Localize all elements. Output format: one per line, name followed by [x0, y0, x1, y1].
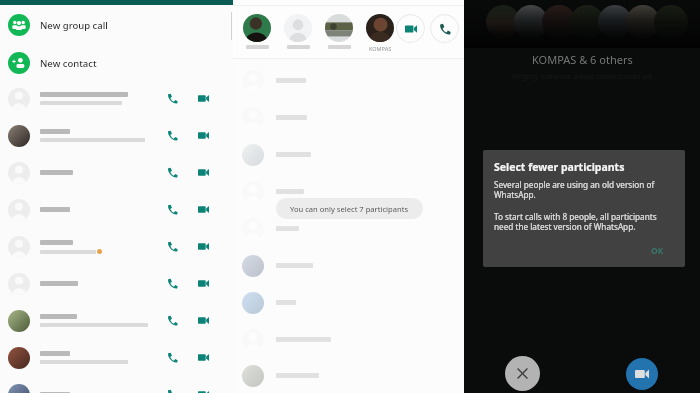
staticText: KOMPAS & 6 others — [532, 52, 633, 67]
staticText: To start calls with 8 people, all partic… — [494, 211, 657, 233]
button[interactable]: Voice call — [430, 14, 459, 43]
button[interactable] — [233, 62, 464, 99]
button[interactable] — [366, 14, 394, 42]
button[interactable]: Voice call — [162, 228, 182, 265]
button[interactable]: Voice call — [162, 265, 182, 302]
button[interactable]: Voice call — [162, 302, 182, 339]
button[interactable] — [325, 14, 353, 42]
button[interactable]: Start video call — [626, 358, 658, 390]
button[interactable]: Voice call — [162, 80, 182, 117]
button[interactable]: Voice call — [162, 376, 182, 393]
button[interactable]: Video call — [193, 376, 213, 393]
button[interactable] — [233, 173, 464, 210]
button[interactable]: Voice call — [0, 376, 233, 393]
button[interactable]: Voice call — [0, 80, 233, 117]
button[interactable]: Video call — [193, 80, 213, 117]
button[interactable]: OK — [647, 242, 668, 260]
button[interactable] — [233, 136, 464, 173]
button[interactable]: Voice call — [0, 302, 233, 339]
staticText: New group call — [40, 19, 108, 32]
staticText: Select fewer participants — [494, 160, 625, 174]
staticText: OK — [651, 245, 664, 257]
button[interactable]: Voice call — [0, 228, 233, 265]
staticText: KOMPAS — [369, 45, 392, 52]
staticText: Several people are using an old version … — [494, 179, 655, 201]
button[interactable]: Cancel call — [505, 356, 540, 391]
button[interactable] — [243, 14, 271, 42]
button[interactable]: Voice call — [162, 339, 182, 376]
button[interactable]: Video call — [396, 14, 425, 43]
button[interactable] — [233, 321, 464, 358]
button[interactable] — [233, 210, 464, 247]
button[interactable]: Video call — [193, 117, 213, 154]
button[interactable]: Video call — [193, 228, 213, 265]
button[interactable] — [233, 247, 464, 284]
button[interactable] — [284, 14, 312, 42]
button[interactable]: Video call — [193, 339, 213, 376]
button[interactable]: Video call — [193, 265, 213, 302]
button[interactable] — [233, 99, 464, 136]
button[interactable]: Voice call — [0, 191, 233, 228]
staticText: Ringing, someone please connect soon yet — [512, 72, 653, 82]
button[interactable]: Voice call — [0, 154, 233, 191]
button[interactable] — [233, 284, 464, 321]
button[interactable]: Voice call — [0, 265, 233, 302]
button[interactable]: Voice call — [162, 117, 182, 154]
button[interactable]: New contact — [0, 44, 233, 82]
button[interactable]: Video call — [193, 191, 213, 228]
button[interactable]: Voice call — [162, 154, 182, 191]
staticText: You can only select 7 participants — [290, 204, 409, 214]
button[interactable]: Voice call — [162, 191, 182, 228]
staticText: New contact — [40, 57, 97, 70]
button[interactable] — [233, 358, 464, 393]
button[interactable]: Voice call — [0, 117, 233, 154]
button[interactable]: Video call — [193, 154, 213, 191]
button[interactable]: Video call — [193, 302, 213, 339]
button[interactable]: New group call — [0, 6, 233, 44]
button[interactable]: Voice call — [0, 339, 233, 376]
